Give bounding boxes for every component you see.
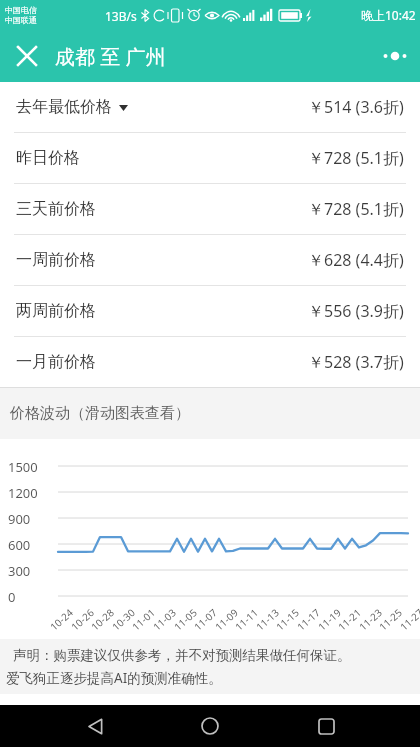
- staticText: 昨日价格: [16, 148, 80, 168]
- staticText: 11-13: [253, 605, 282, 633]
- staticText: 成都 至 广州: [55, 43, 166, 70]
- button[interactable]: 两周前价格: [0, 286, 420, 336]
- button[interactable]: Home: [189, 705, 231, 747]
- staticText: 10-30: [109, 605, 138, 633]
- staticText: 300: [8, 562, 31, 580]
- staticText: 11-03: [150, 605, 179, 633]
- staticText: ￥528 (3.7折): [308, 351, 404, 373]
- staticText: 11-09: [212, 605, 241, 633]
- staticText: 11-25: [376, 605, 405, 633]
- staticText: 11-01: [129, 605, 158, 633]
- staticText: ￥514 (3.6折): [308, 96, 404, 118]
- staticText: 1200: [8, 484, 38, 502]
- staticText: 10-28: [88, 605, 117, 633]
- staticText: ￥556 (3.9折): [308, 300, 404, 322]
- staticText: 11-17: [294, 605, 323, 633]
- button[interactable]: 三天前价格: [0, 184, 420, 234]
- staticText: 0: [8, 588, 16, 606]
- staticText: 两周前价格: [16, 301, 96, 321]
- staticText: 晚上10:42: [361, 7, 416, 23]
- staticText: 去年最低价格: [16, 97, 112, 117]
- staticText: 900: [8, 510, 31, 528]
- staticText: 11-07: [191, 605, 220, 633]
- button[interactable]: 昨日价格: [0, 133, 420, 183]
- staticText: 11-21: [335, 605, 364, 633]
- staticText: 价格波动（滑动图表查看）: [10, 404, 190, 423]
- staticText: 声明：购票建议仅供参考，并不对预测结果做任何保证。: [6, 646, 351, 664]
- button[interactable]: More options: [372, 33, 418, 79]
- staticText: 600: [8, 536, 31, 554]
- staticText: 11-27: [397, 605, 420, 633]
- staticText: 13B/s: [105, 8, 137, 24]
- staticText: ￥728 (5.1折): [308, 147, 404, 169]
- staticText: 11-11: [232, 605, 261, 633]
- staticText: 中国联通: [5, 15, 37, 25]
- staticText: ￥628 (4.4折): [308, 249, 404, 271]
- staticText: ￥728 (5.1折): [308, 198, 404, 220]
- staticText: 中国电信: [5, 5, 37, 15]
- button[interactable]: 一周前价格: [0, 235, 420, 285]
- staticText: 10-26: [68, 605, 97, 633]
- staticText: 三天前价格: [16, 199, 96, 219]
- button[interactable]: Close: [4, 33, 50, 79]
- staticText: 10-24: [47, 605, 76, 633]
- staticText: 一周前价格: [16, 250, 96, 270]
- staticText: 11-05: [171, 605, 200, 633]
- staticText: 11-19: [315, 605, 344, 633]
- staticText: 一月前价格: [16, 352, 96, 372]
- staticText: 爱飞狗正逐步提高AI的预测准确性。: [6, 669, 222, 687]
- button[interactable]: Back: [74, 705, 116, 747]
- button[interactable]: 一月前价格: [0, 337, 420, 387]
- button[interactable]: 去年最低价格: [0, 82, 420, 132]
- button[interactable]: Recent apps: [305, 705, 347, 747]
- staticText: 1500: [8, 458, 38, 476]
- staticText: 11-23: [356, 605, 385, 633]
- staticText: 11-15: [273, 605, 302, 633]
